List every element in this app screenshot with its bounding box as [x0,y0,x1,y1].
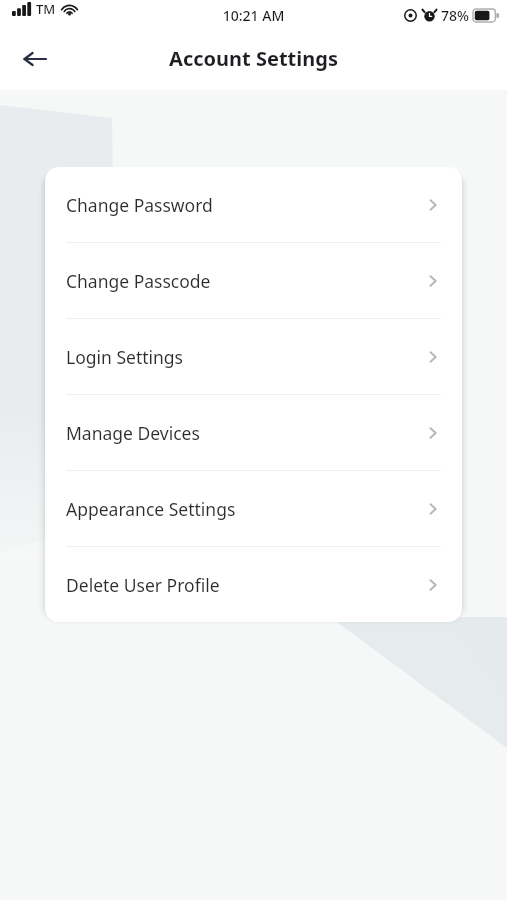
button[interactable]: Back [14,38,56,80]
staticText: Change Password [66,193,213,217]
staticText: Account Settings [0,45,507,72]
staticText: TM [36,0,56,18]
button[interactable]: Change Password [45,167,462,242]
button[interactable]: Appearance Settings [45,471,462,546]
staticText: Manage Devices [66,421,200,445]
button[interactable]: Change Passcode [45,243,462,318]
button[interactable]: Login Settings [45,319,462,394]
staticText: 10:21 AM [0,6,507,25]
button[interactable]: Delete User Profile [45,547,462,622]
staticText: Change Passcode [66,269,211,293]
staticText: Login Settings [66,345,183,369]
staticText: Delete User Profile [66,573,220,597]
button[interactable]: Manage Devices [45,395,462,470]
staticText: 78% [441,6,469,25]
staticText: Appearance Settings [66,497,236,521]
